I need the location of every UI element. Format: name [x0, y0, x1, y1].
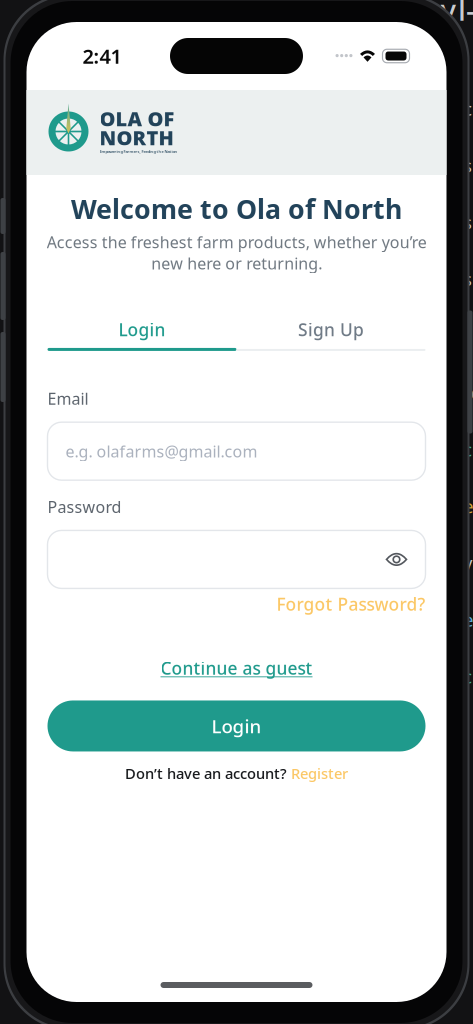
- staticText: Login: [211, 714, 261, 738]
- staticText: c: [463, 437, 472, 461]
- staticText: v: [463, 550, 472, 575]
- staticText: o: [463, 380, 473, 405]
- button[interactable]: Register: [291, 763, 348, 783]
- staticText: s: [463, 153, 472, 178]
- staticText: c: [463, 664, 472, 689]
- staticText: NORTH: [99, 124, 173, 151]
- staticText: e: [463, 607, 473, 632]
- staticText: Register: [291, 763, 348, 783]
- staticText: Forgot Password?: [276, 592, 425, 615]
- staticText: Email: [47, 388, 88, 409]
- button[interactable]: Login: [47, 700, 425, 751]
- staticText: Access the freshest farm products, wheth…: [46, 231, 426, 274]
- staticText: Continue as guest: [160, 656, 312, 679]
- button[interactable]: Show password: [385, 550, 407, 568]
- staticText: Sign Up: [298, 318, 364, 341]
- button[interactable]: Login: [47, 318, 236, 351]
- staticText: 2:41: [82, 43, 121, 69]
- button[interactable]: Sign Up: [236, 318, 425, 351]
- staticText: ={: [382, 9, 410, 48]
- button[interactable]: Continue as guest: [160, 656, 312, 679]
- staticText: s: [463, 210, 472, 234]
- staticText: Welcome to Ola of North: [71, 191, 402, 226]
- staticText: OLA OF: [99, 105, 174, 132]
- staticText: c: [463, 323, 472, 348]
- staticText: Empowering Farmers, Feeding the Nation: [99, 149, 177, 154]
- staticText: s: [463, 266, 472, 291]
- staticText: c: [463, 96, 472, 121]
- staticText: Login: [118, 318, 165, 341]
- staticText: Don’t have an account?: [125, 763, 287, 783]
- staticText: e.g. olafarms@gmail.com: [65, 441, 257, 462]
- staticText: e: [463, 493, 473, 518]
- staticText: style: [410, 0, 473, 68]
- button[interactable]: Forgot Password?: [276, 592, 425, 615]
- staticText: Password: [47, 496, 121, 517]
